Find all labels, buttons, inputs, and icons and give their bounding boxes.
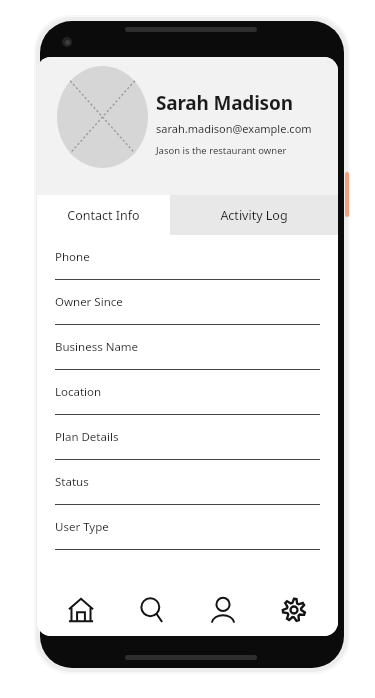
button[interactable]: Location [37, 370, 338, 415]
button[interactable]: Profile [196, 584, 250, 636]
button[interactable]: Phone [37, 235, 338, 280]
button[interactable]: Contact Info [37, 195, 170, 235]
staticText: Status [55, 474, 89, 490]
button[interactable]: Settings [267, 584, 321, 636]
staticText: Plan Details [55, 429, 119, 445]
button[interactable]: Search [125, 584, 179, 636]
button[interactable]: Business Name [37, 325, 338, 370]
staticText: Phone [55, 249, 90, 265]
staticText: User Type [55, 519, 109, 535]
button[interactable]: Owner Since [37, 280, 338, 325]
staticText: Sarah Madison [156, 90, 293, 116]
staticText: Business Name [55, 339, 139, 355]
staticText: sarah.madison@example.com [156, 121, 312, 136]
staticText: Location [55, 384, 102, 400]
button[interactable]: User Type [37, 505, 338, 550]
staticText: Contact Info [67, 207, 140, 224]
staticText: Owner Since [55, 294, 123, 310]
button[interactable]: Home [54, 584, 108, 636]
button[interactable]: Activity Log [170, 195, 338, 235]
button[interactable]: Plan Details [37, 415, 338, 460]
staticText: Activity Log [220, 207, 288, 224]
button[interactable]: Status [37, 460, 338, 505]
staticText: Jason is the restaurant owner [156, 144, 287, 157]
